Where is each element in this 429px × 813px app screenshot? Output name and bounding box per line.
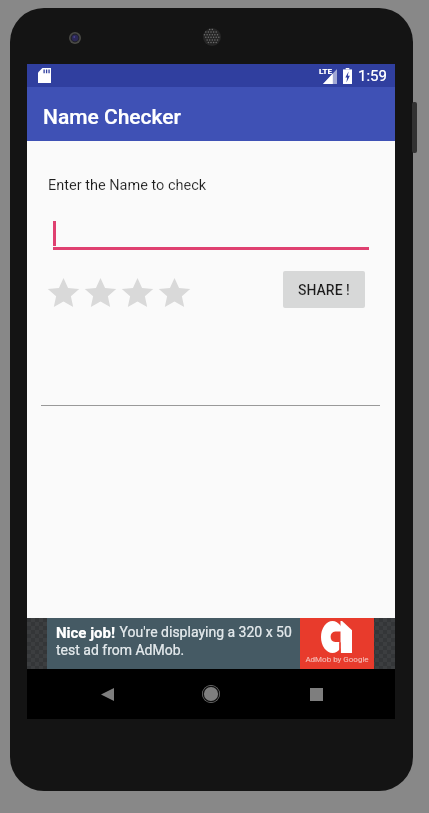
button[interactable]: Star bbox=[119, 277, 156, 311]
staticText: Nice job! bbox=[56, 624, 116, 642]
button[interactable]: Back bbox=[82, 669, 132, 719]
button[interactable]: Star bbox=[82, 277, 119, 311]
button[interactable]: Recents bbox=[291, 669, 341, 719]
staticText: SHARE ! bbox=[298, 282, 350, 298]
staticText: test ad from AdMob. bbox=[56, 642, 185, 658]
button[interactable]: SHARE ! bbox=[283, 271, 365, 308]
button[interactable]: Nice job! bbox=[27, 618, 395, 669]
button[interactable]: Home bbox=[186, 669, 236, 719]
button[interactable]: Star bbox=[156, 277, 193, 311]
staticText: AdMob by Google bbox=[305, 655, 369, 664]
staticText: 1:59 bbox=[358, 67, 387, 85]
staticText: Enter the Name to check bbox=[48, 177, 207, 194]
button[interactable]: Star bbox=[45, 277, 82, 311]
staticText: LTE bbox=[319, 67, 332, 76]
staticText: You're displaying a 320 x 50 bbox=[116, 624, 292, 640]
staticText: Name Checker bbox=[43, 105, 181, 130]
